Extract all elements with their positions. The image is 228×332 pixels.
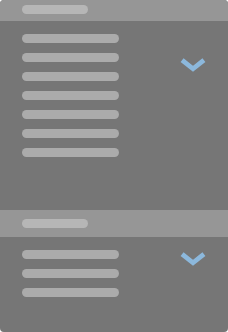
button[interactable]: Expand section xyxy=(179,248,207,268)
button[interactable]: Expand section xyxy=(179,54,207,74)
button[interactable] xyxy=(0,0,228,21)
button[interactable] xyxy=(0,210,228,237)
